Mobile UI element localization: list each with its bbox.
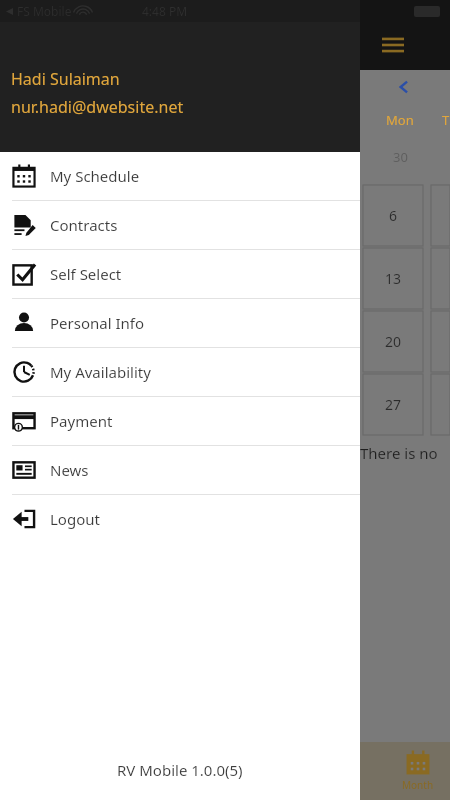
button[interactable]: Open menu [378, 30, 408, 60]
staticText: 4:48 PM [142, 3, 188, 19]
staticText: Self Select [50, 264, 122, 284]
staticText: Mon [386, 111, 414, 129]
staticText: Contracts [50, 215, 118, 235]
button[interactable] [431, 311, 450, 372]
button[interactable] [431, 374, 450, 435]
staticText: nur.hadi@dwebsite.net [11, 96, 184, 118]
button[interactable]: News [0, 446, 360, 494]
button[interactable]: Self Select [0, 250, 360, 298]
button[interactable]: Payment [0, 397, 360, 445]
staticText: News [50, 460, 89, 480]
staticText: 27 [385, 395, 402, 414]
staticText: FS Mobile [17, 3, 72, 19]
button[interactable]: Contracts [0, 201, 360, 249]
button[interactable]: 27 [363, 374, 423, 435]
button[interactable]: Logout [0, 495, 360, 543]
staticText: Month [402, 778, 434, 792]
staticText: There is no [360, 443, 438, 463]
staticText: 6 [389, 206, 398, 225]
button[interactable]: Personal Info [0, 299, 360, 347]
button[interactable] [431, 185, 450, 246]
staticText: Personal Info [50, 313, 145, 333]
button[interactable]: 6 [363, 185, 423, 246]
button[interactable]: My Schedule [0, 152, 360, 200]
staticText: Hadi Sulaiman [11, 68, 120, 90]
staticText: My Schedule [50, 166, 140, 186]
staticText: Logout [50, 509, 100, 529]
staticText: 13 [385, 269, 402, 288]
staticText: T [442, 111, 450, 129]
staticText: 20 [385, 332, 402, 351]
button[interactable]: My Availability [0, 348, 360, 396]
staticText: 30 [393, 148, 408, 166]
button[interactable]: 13 [363, 248, 423, 309]
staticText: Payment [50, 411, 113, 431]
staticText: My Availability [50, 362, 151, 382]
button[interactable] [431, 248, 450, 309]
button[interactable]: 20 [363, 311, 423, 372]
staticText: RV Mobile 1.0.0(5) [117, 760, 243, 780]
